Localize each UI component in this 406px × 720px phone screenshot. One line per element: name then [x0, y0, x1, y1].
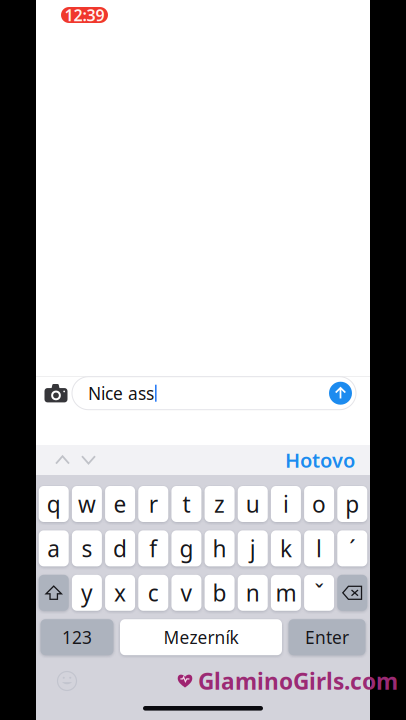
staticText: f [149, 533, 157, 563]
staticText: n [246, 578, 260, 608]
button[interactable]: g [171, 530, 201, 566]
staticText: v [180, 578, 192, 608]
button[interactable]: Enter [288, 619, 365, 655]
staticText: w [78, 489, 96, 519]
staticText: Nice ass [88, 382, 154, 405]
button[interactable]: Emoji [54, 668, 80, 694]
button[interactable]: z [205, 486, 235, 522]
staticText: Mezerník [163, 626, 238, 649]
button[interactable]: d [105, 530, 135, 566]
button[interactable]: k [271, 530, 301, 566]
button[interactable]: ´ [337, 530, 367, 566]
staticText: GlaminoGirls.com [198, 666, 398, 696]
button[interactable]: ˇ [304, 575, 334, 611]
button[interactable]: a [39, 530, 69, 566]
staticText: a [47, 533, 60, 563]
staticText: j [250, 533, 256, 563]
staticText: ˇ [315, 578, 324, 608]
staticText: c [148, 578, 159, 608]
staticText: k [280, 533, 292, 563]
button[interactable]: n [238, 575, 268, 611]
staticText: m [275, 578, 296, 608]
staticText: x [114, 578, 126, 608]
staticText: u [246, 489, 260, 519]
staticText: g [179, 533, 193, 563]
button[interactable]: l [304, 530, 334, 566]
button[interactable]: y [72, 575, 102, 611]
button[interactable]: i [271, 486, 301, 522]
staticText: z [214, 489, 225, 519]
button[interactable]: 123 [40, 619, 113, 655]
staticText: q [47, 489, 61, 519]
button[interactable]: Mezerník [120, 619, 282, 655]
staticText: h [213, 533, 227, 563]
button[interactable]: f [138, 530, 168, 566]
staticText: l [316, 533, 322, 563]
staticText: e [114, 489, 127, 519]
button[interactable]: o [304, 486, 334, 522]
staticText: y [81, 578, 93, 608]
staticText: r [149, 489, 158, 519]
button[interactable]: Next field [81, 445, 96, 475]
button[interactable]: m [271, 575, 301, 611]
staticText: Hotovo [285, 447, 355, 473]
button[interactable]: c [138, 575, 168, 611]
button[interactable]: Camera [40, 377, 72, 410]
button[interactable]: Delete [337, 575, 367, 611]
staticText: 12:39 [64, 4, 104, 26]
button[interactable]: Shift [39, 575, 69, 611]
button[interactable]: b [205, 575, 235, 611]
button[interactable]: e [105, 486, 135, 522]
staticText: i [283, 489, 289, 519]
button[interactable]: j [238, 530, 268, 566]
button[interactable]: x [105, 575, 135, 611]
button[interactable]: s [72, 530, 102, 566]
staticText: b [213, 578, 227, 608]
button[interactable]: r [138, 486, 168, 522]
staticText: t [182, 489, 190, 519]
button[interactable]: q [39, 486, 69, 522]
button[interactable]: u [238, 486, 268, 522]
button[interactable]: Previous field [55, 445, 70, 475]
staticText: ´ [349, 533, 355, 563]
staticText: o [312, 489, 326, 519]
button[interactable]: v [171, 575, 201, 611]
staticText: d [113, 533, 127, 563]
staticText: Enter [305, 626, 349, 649]
staticText: p [345, 489, 359, 519]
button[interactable]: h [205, 530, 235, 566]
button[interactable]: t [171, 486, 201, 522]
button[interactable]: p [337, 486, 367, 522]
button[interactable]: Hotovo [285, 445, 355, 475]
button[interactable]: w [72, 486, 102, 522]
staticText: s [81, 533, 92, 563]
staticText: 123 [62, 626, 92, 649]
